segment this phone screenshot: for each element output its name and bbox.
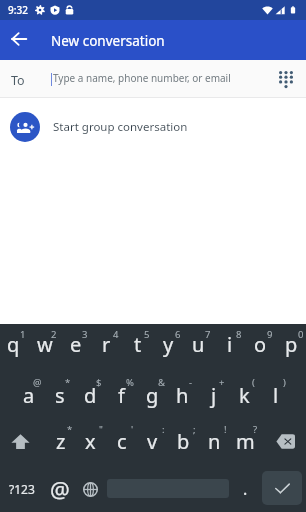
staticText: !: [224, 423, 227, 436]
button[interactable]: s: [44, 379, 75, 411]
button[interactable]: ?123: [0, 466, 43, 512]
button[interactable]: l: [260, 379, 291, 411]
staticText: d: [84, 382, 97, 409]
staticText: 8: [236, 328, 242, 341]
staticText: x: [85, 428, 96, 455]
staticText: *: [67, 423, 73, 436]
staticText: 9: [267, 328, 273, 341]
staticText: s: [55, 382, 65, 409]
staticText: j: [211, 382, 217, 409]
staticText: u: [192, 331, 205, 358]
staticText: ): [283, 376, 286, 389]
button[interactable]: .: [232, 466, 258, 512]
staticText: w: [37, 331, 53, 358]
staticText: ?123: [9, 481, 35, 497]
staticText: i: [227, 331, 233, 358]
button[interactable]: g: [137, 379, 168, 411]
staticText: l: [273, 382, 279, 409]
button[interactable]: j: [198, 379, 229, 411]
button[interactable]: b: [168, 425, 199, 457]
staticText: y: [163, 331, 174, 358]
staticText: v: [147, 428, 158, 455]
button[interactable]: Dialpad: [267, 60, 305, 98]
button[interactable]: Start group conversation: [0, 98, 306, 156]
staticText: b: [177, 428, 190, 455]
staticText: ?: [253, 423, 258, 436]
button[interactable]: Shift: [0, 418, 40, 464]
staticText: 5: [144, 328, 150, 341]
staticText: $: [96, 376, 102, 389]
button[interactable]: k: [229, 379, 260, 411]
staticText: h: [176, 382, 189, 409]
button[interactable]: Back: [0, 20, 38, 58]
staticText: m: [236, 428, 255, 455]
staticText: :: [162, 423, 165, 436]
button[interactable]: t: [122, 328, 153, 360]
staticText: o: [254, 331, 267, 358]
button[interactable]: f: [106, 379, 137, 411]
staticText: a: [23, 382, 35, 409]
staticText: (: [252, 376, 255, 389]
staticText: %: [126, 376, 134, 389]
button[interactable]: q: [0, 328, 29, 360]
staticText: 6: [175, 328, 181, 341]
staticText: +: [219, 376, 225, 389]
staticText: 1: [20, 328, 26, 341]
button[interactable]: h: [167, 379, 198, 411]
staticText: @: [33, 376, 42, 389]
button[interactable]: u: [183, 328, 214, 360]
staticText: Type a name, phone number, or email: [53, 71, 231, 85]
staticText: p: [285, 331, 298, 358]
staticText: ': [131, 423, 134, 436]
button[interactable]: c: [106, 425, 137, 457]
staticText: k: [239, 382, 250, 409]
staticText: f: [118, 382, 125, 409]
staticText: 4: [113, 328, 119, 341]
staticText: g: [146, 382, 159, 409]
staticText: t: [134, 331, 142, 358]
button[interactable]: y: [153, 328, 184, 360]
button[interactable]: i: [214, 328, 245, 360]
button[interactable]: n: [199, 425, 230, 457]
button[interactable]: p: [276, 328, 306, 360]
staticText: z: [56, 428, 66, 455]
button[interactable]: r: [91, 328, 122, 360]
button[interactable]: v: [137, 425, 168, 457]
staticText: ;: [193, 423, 196, 436]
staticText: &: [158, 376, 165, 389]
button[interactable]: d: [75, 379, 106, 411]
staticText: To: [11, 72, 25, 89]
button[interactable]: a: [13, 379, 44, 411]
staticText: *: [65, 376, 71, 389]
staticText: e: [70, 331, 82, 358]
button[interactable]: o: [245, 328, 276, 360]
staticText: 9:32: [8, 3, 28, 17]
button[interactable]: @: [43, 466, 76, 512]
button[interactable]: w: [29, 328, 60, 360]
button[interactable]: Backspace: [265, 418, 306, 464]
staticText: ": [99, 423, 103, 436]
staticText: New conversation: [51, 32, 165, 50]
button[interactable]: m: [230, 425, 261, 457]
button[interactable]: z: [45, 425, 76, 457]
staticText: c: [117, 428, 127, 455]
staticText: 3: [82, 328, 88, 341]
staticText: r: [102, 331, 111, 358]
staticText: 2: [51, 328, 57, 341]
staticText: -: [189, 376, 193, 389]
button[interactable]: e: [60, 328, 91, 360]
button[interactable]: Enter: [262, 471, 302, 505]
staticText: n: [208, 428, 221, 455]
staticText: Start group conversation: [53, 119, 188, 135]
staticText: @: [50, 474, 70, 504]
button[interactable]: Change language: [76, 466, 104, 512]
staticText: 0: [298, 328, 304, 341]
staticText: q: [7, 331, 20, 358]
staticText: 7: [205, 328, 211, 341]
staticText: .: [243, 478, 248, 500]
button[interactable]: x: [75, 425, 106, 457]
